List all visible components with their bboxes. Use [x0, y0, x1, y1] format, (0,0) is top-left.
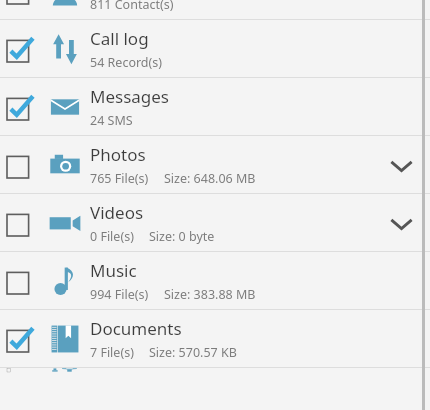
staticText: Size: 570.57 KB [149, 344, 237, 361]
button[interactable]: Unchecked [0, 194, 430, 251]
staticText: Size: 383.88 MB [164, 286, 256, 303]
staticText: Documents [90, 317, 182, 340]
staticText: Photos [90, 143, 146, 166]
button[interactable]: Checked [0, 20, 40, 77]
button[interactable]: Unchecked [0, 252, 430, 309]
staticText: Music [90, 259, 137, 282]
button[interactable]: Checked [0, 310, 430, 367]
button[interactable]: Unchecked [0, 252, 40, 309]
staticText: 0 File(s) [90, 228, 134, 245]
button[interactable]: Unchecked [0, 194, 40, 251]
staticText: 24 SMS [90, 112, 133, 129]
staticText: Call log [90, 27, 149, 50]
button[interactable]: Unchecked [0, 368, 40, 372]
staticText: 994 File(s) [90, 286, 149, 303]
staticText: 765 File(s) [90, 170, 149, 187]
button[interactable]: Checked [0, 78, 40, 135]
staticText: Videos [90, 201, 144, 224]
button[interactable]: Checked [0, 310, 40, 367]
button[interactable]: Unchecked [0, 0, 430, 19]
staticText: 54 Record(s) [90, 54, 163, 71]
button[interactable]: Unchecked [0, 0, 40, 19]
staticText: Size: 648.06 MB [164, 170, 256, 187]
staticText: 7 File(s) [90, 344, 134, 361]
button[interactable]: Unchecked [0, 368, 430, 372]
button[interactable]: Checked [0, 20, 430, 77]
staticText: Size: 0 byte [149, 228, 215, 245]
button[interactable]: Unchecked [0, 136, 40, 193]
staticText: Messages [90, 85, 170, 108]
staticText: 811 Contact(s) [90, 0, 174, 13]
button[interactable]: Checked [0, 78, 430, 135]
button[interactable]: Expand Photos [378, 142, 424, 188]
button[interactable]: Unchecked [0, 136, 430, 193]
button[interactable]: Expand Videos [378, 200, 424, 246]
